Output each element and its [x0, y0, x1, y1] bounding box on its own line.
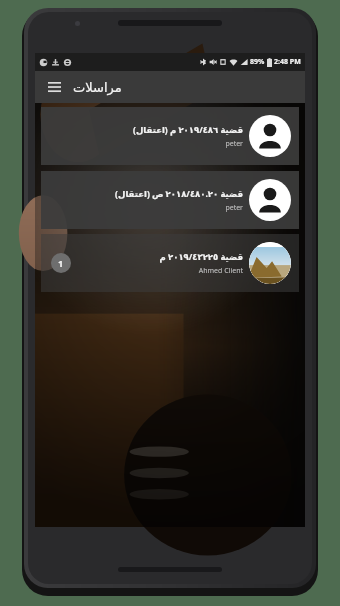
button[interactable]: 1 — [35, 234, 305, 292]
staticText: Ahmed Client — [198, 266, 243, 276]
staticText: peter — [225, 139, 243, 149]
button[interactable]: Open navigation menu — [43, 76, 65, 98]
staticText: 2:48 PM — [274, 57, 301, 67]
staticText: قضية ٢٠١٨/٤٨٠.٢٠ ص (اعتقال) — [115, 188, 243, 200]
staticText: قضية ٢٠١٩/٤٣٢٢٥ م — [159, 251, 243, 263]
staticText: peter — [225, 203, 243, 213]
button[interactable]: قضية ٢٠١٩/٤٨٦ م (اعتقال) — [35, 107, 305, 165]
staticText: قضية ٢٠١٩/٤٨٦ م (اعتقال) — [133, 124, 243, 136]
button[interactable]: قضية ٢٠١٨/٤٨٠.٢٠ ص (اعتقال) — [35, 171, 305, 229]
staticText: 89% — [250, 57, 265, 67]
staticText: 1 — [58, 257, 64, 269]
staticText: مراسلات — [73, 80, 122, 95]
